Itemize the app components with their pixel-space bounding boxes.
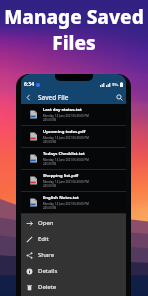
staticText: Last day status.txt [43,107,82,113]
button[interactable]: Edit [21,231,126,247]
staticText: Todays Checklist.txt [43,151,85,157]
staticText: Monday, 14 June 2021 06:30:00 PM [43,202,89,206]
staticText: Files [52,30,96,56]
staticText: Edit [38,235,49,243]
staticText: 245.00 KB [43,118,57,122]
staticText: Monday, 14 June 2021 06:30:00 PM [43,158,89,162]
button[interactable]: Last day status.txt [21,104,126,126]
staticText: Upcoming todos.pdf [43,129,86,135]
button[interactable]: Upcoming todos.pdf [21,126,126,148]
button[interactable]: Open [21,215,126,231]
button[interactable]: Details [21,263,126,279]
staticText: Shopping list.pdf [43,173,79,179]
staticText: 245.00 KB [43,184,57,188]
staticText: Monday, 14 June 2021 06:30:00 PM [43,180,89,184]
button[interactable]: Back [21,91,35,104]
staticText: Delete [38,283,57,291]
staticText: 6:34 [24,81,34,88]
staticText: Open [38,219,54,227]
staticText: 245.00 KB [43,162,57,166]
staticText: Monday, 14 June 2021 06:30:00 PM [43,136,89,140]
staticText: Monday, 14 June 2021 06:30:00 PM [43,114,89,118]
staticText: English Notes.txt [43,195,79,201]
staticText: 245.00 KB [43,206,57,210]
staticText: 99+ [112,82,119,87]
button[interactable]: Share [21,247,126,263]
staticText: Details [38,267,58,275]
button[interactable]: Todays Checklist.txt [21,148,126,170]
button[interactable]: English Notes.txt [21,192,126,214]
staticText: Saved File [38,93,69,102]
button[interactable]: Delete [21,279,126,295]
button[interactable]: Shopping list.pdf [21,170,126,192]
staticText: Share [38,251,55,259]
button[interactable]: Search [112,91,126,104]
staticText: 245.00 KB [43,140,57,144]
staticText: Manage Saved [4,4,144,30]
